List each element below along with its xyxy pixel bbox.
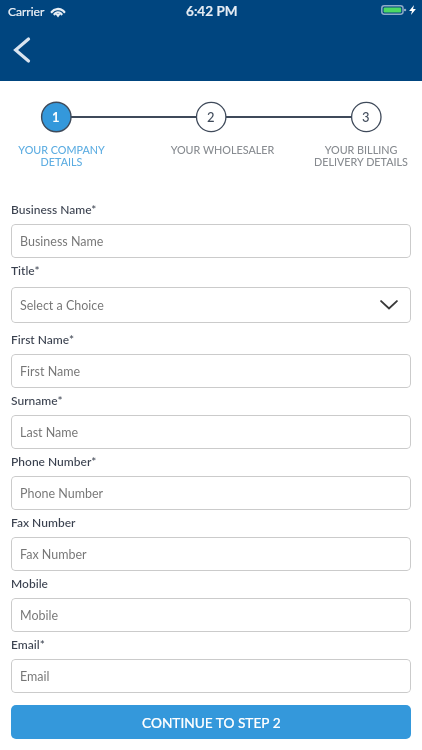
- staticText: YOUR BILLING DELIVERY DETAILS: [300, 143, 422, 168]
- staticText: Email*: [11, 637, 45, 651]
- staticText: Email: [20, 669, 50, 684]
- button[interactable]: Fax Number: [11, 537, 411, 571]
- staticText: Mobile: [11, 576, 48, 590]
- button[interactable]: Last Name: [11, 415, 411, 449]
- staticText: Carrier: [8, 4, 45, 18]
- button[interactable]: Business Name: [11, 224, 411, 258]
- staticText: Phone Number: [20, 486, 104, 501]
- button[interactable]: CONTINUE TO STEP 2: [11, 705, 411, 739]
- staticText: Surname*: [11, 393, 63, 407]
- button[interactable]: First Name: [11, 354, 411, 388]
- staticText: Fax Number: [11, 515, 76, 529]
- staticText: 2: [207, 109, 215, 125]
- staticText: 1: [52, 109, 60, 125]
- staticText: Business Name: [20, 234, 104, 249]
- button[interactable]: Mobile: [11, 598, 411, 632]
- staticText: Mobile: [20, 608, 59, 623]
- staticText: Business Name*: [11, 202, 97, 216]
- staticText: Title*: [11, 263, 40, 277]
- staticText: CONTINUE TO STEP 2: [142, 714, 281, 730]
- staticText: First Name*: [11, 332, 74, 346]
- staticText: Fax Number: [20, 547, 87, 562]
- staticText: YOUR COMPANY DETAILS: [0, 143, 123, 168]
- button[interactable]: Phone Number: [11, 476, 411, 510]
- staticText: First Name: [20, 364, 81, 379]
- button[interactable]: Back: [6, 33, 42, 69]
- button[interactable]: Select a Choice: [11, 287, 411, 323]
- staticText: 3: [362, 109, 370, 125]
- staticText: 6:42 PM: [186, 3, 238, 19]
- staticText: Phone Number*: [11, 454, 97, 468]
- button[interactable]: Email: [11, 659, 411, 693]
- staticText: Last Name: [20, 425, 79, 440]
- staticText: YOUR WHOLESALER: [152, 143, 293, 156]
- staticText: Select a Choice: [20, 298, 104, 313]
